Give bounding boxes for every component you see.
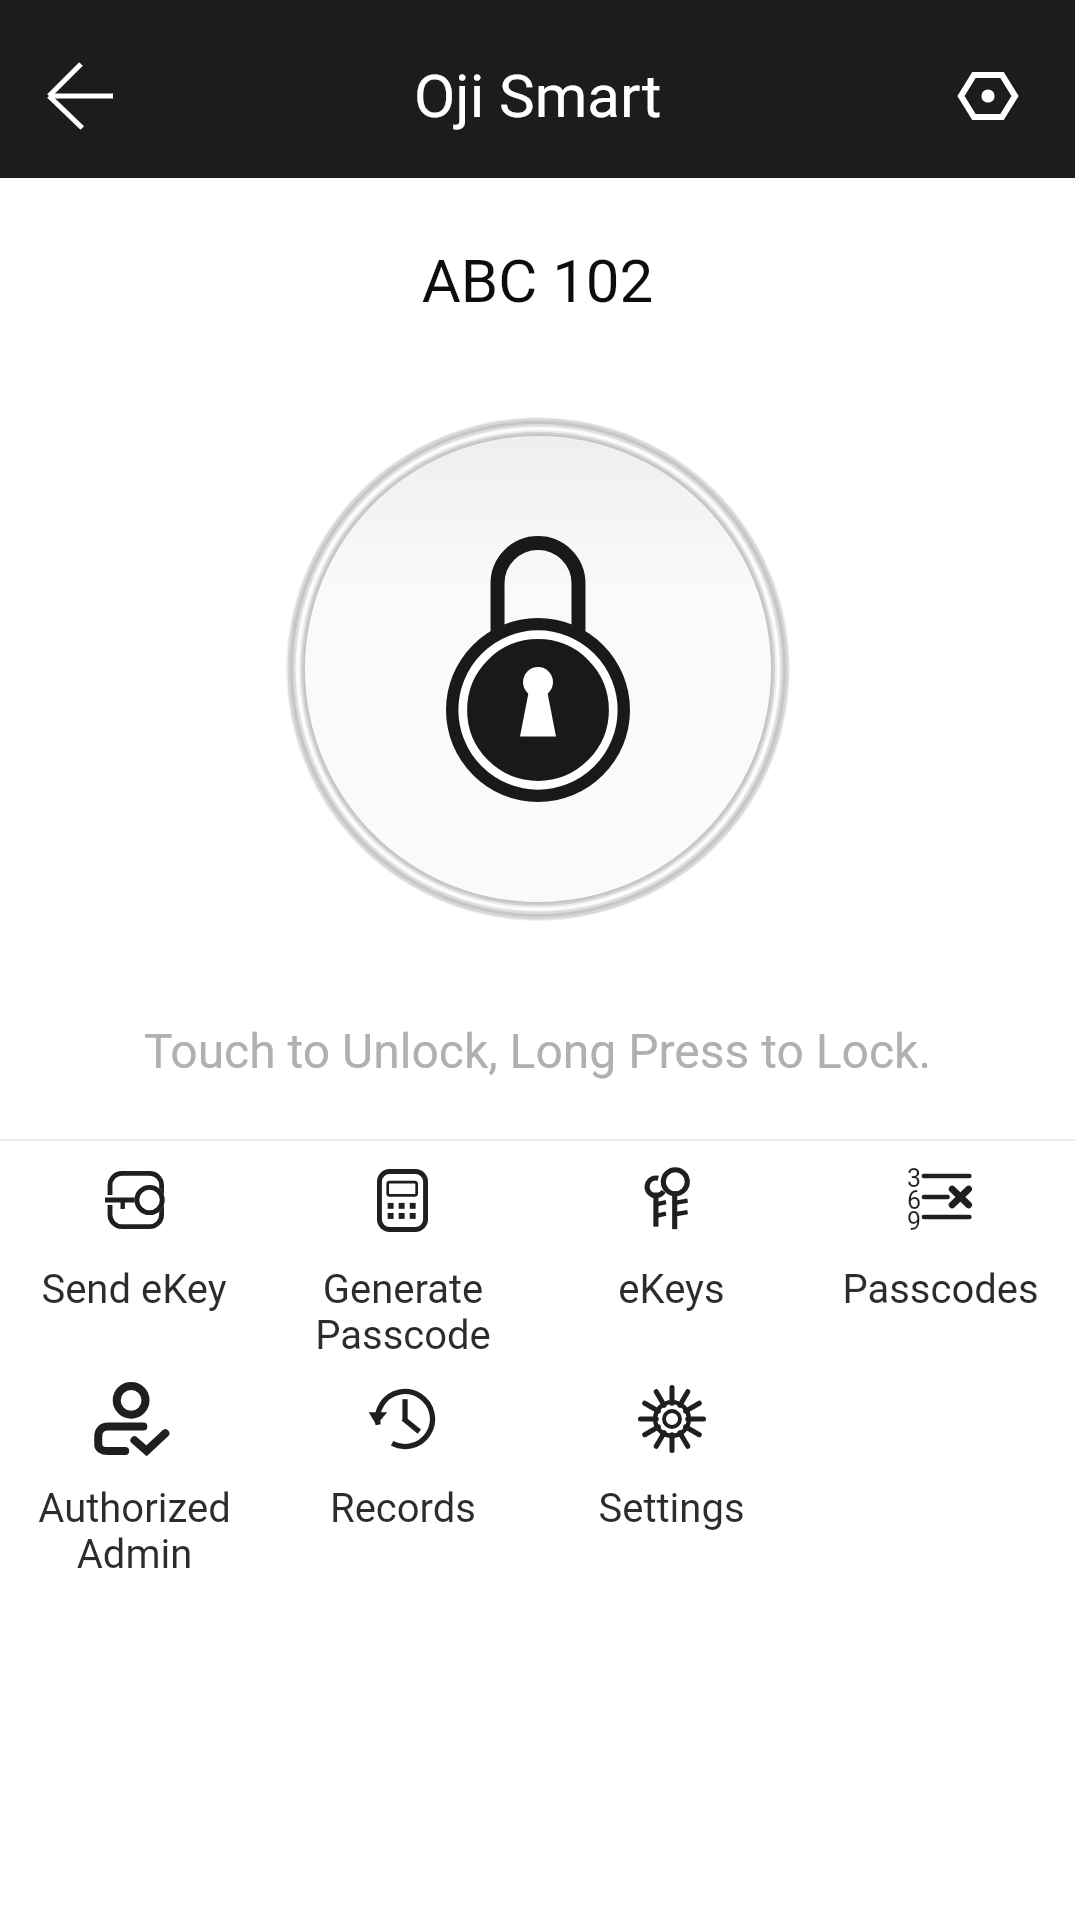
button[interactable]: 3 6 9 (806, 1160, 1075, 1313)
staticText: ABC 102 (0, 246, 1075, 316)
button[interactable]: eKeys (537, 1160, 806, 1313)
staticText: Records (330, 1485, 476, 1532)
staticText: Authorized Admin (38, 1485, 231, 1578)
staticText: 3 6 9 (907, 1164, 922, 1234)
button[interactable]: Send eKey (0, 1160, 268, 1313)
staticText: Oji Smart (414, 61, 662, 131)
staticText: Touch to Unlock, Long Press to Lock. (0, 1023, 1075, 1079)
button[interactable]: Authorized Admin (0, 1379, 268, 1578)
staticText: Settings (598, 1485, 745, 1532)
button[interactable]: Settings (537, 1379, 806, 1532)
button[interactable]: Back (26, 41, 136, 151)
staticText: Passcodes (842, 1266, 1039, 1313)
staticText: Generate Passcode (315, 1266, 491, 1359)
button[interactable]: Records (268, 1379, 537, 1532)
button[interactable]: Unlock (286, 417, 790, 921)
staticText: Send eKey (41, 1266, 227, 1313)
staticText: eKeys (618, 1266, 725, 1313)
button[interactable]: Device settings (933, 41, 1043, 151)
button[interactable]: Generate Passcode (268, 1160, 537, 1359)
